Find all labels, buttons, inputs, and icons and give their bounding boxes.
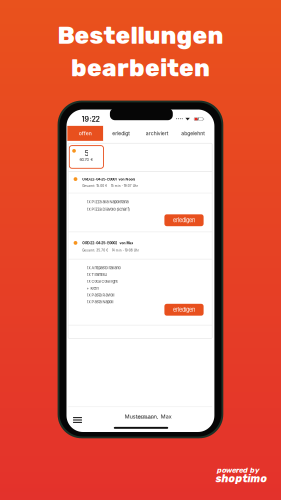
staticText: Bestellungen — [57, 21, 223, 50]
staticText: 60.70 € — [79, 157, 93, 162]
staticText: 15 min - 19:07 Uhr — [111, 184, 138, 188]
staticText: 1x Coca Cola light — [86, 279, 117, 284]
staticText: 1x Tiramisu — [86, 272, 106, 277]
staticText: powered by — [217, 466, 260, 475]
button[interactable]: Menü — [69, 414, 85, 426]
staticText: Gesamt: 35.70 € — [82, 248, 108, 252]
staticText: + klein — [86, 286, 98, 291]
staticText: ORD-22-04-25-E0001 — [82, 177, 116, 181]
staticText: 1x Antipasto Italiano — [86, 265, 120, 270]
button[interactable]: offen — [67, 126, 103, 141]
staticText: shoptimo — [215, 473, 267, 485]
staticText: 5 — [84, 149, 88, 158]
button[interactable]: erledigen — [164, 304, 204, 316]
staticText: 1x Pasta Ravioli — [86, 293, 114, 297]
button[interactable]: erledigen — [164, 214, 204, 226]
staticText: bearbeiten — [71, 54, 210, 82]
staticText: erledigt — [112, 130, 130, 136]
staticText: archiviert — [146, 130, 169, 136]
staticText: Mitarbeiter — [136, 416, 153, 420]
button[interactable]: erledigt — [103, 126, 139, 141]
staticText: offen — [79, 130, 92, 136]
staticText: erledigen — [173, 217, 195, 224]
staticText: 14 min - 19:08 Uhr — [112, 248, 139, 252]
staticText: abgelehnt — [181, 130, 205, 136]
staticText: 1x Pizza alla Napoletana — [86, 199, 128, 204]
staticText: 1x Pasta Napoli — [86, 299, 113, 304]
staticText: von Noora — [118, 177, 135, 181]
staticText: erledigen — [173, 306, 195, 313]
staticText: 1x Pizza Diavolo (scharf) — [86, 207, 129, 212]
staticText: ORD-22-04-25-E0002 — [82, 241, 117, 245]
staticText: 19:22 — [81, 115, 99, 123]
button[interactable]: archiviert — [139, 126, 175, 141]
staticText: Gesamt: 15.00 € — [82, 184, 107, 188]
staticText: Mustermann, Max — [125, 413, 172, 420]
button[interactable]: abgelehnt — [175, 126, 211, 141]
staticText: von Max — [119, 241, 133, 245]
